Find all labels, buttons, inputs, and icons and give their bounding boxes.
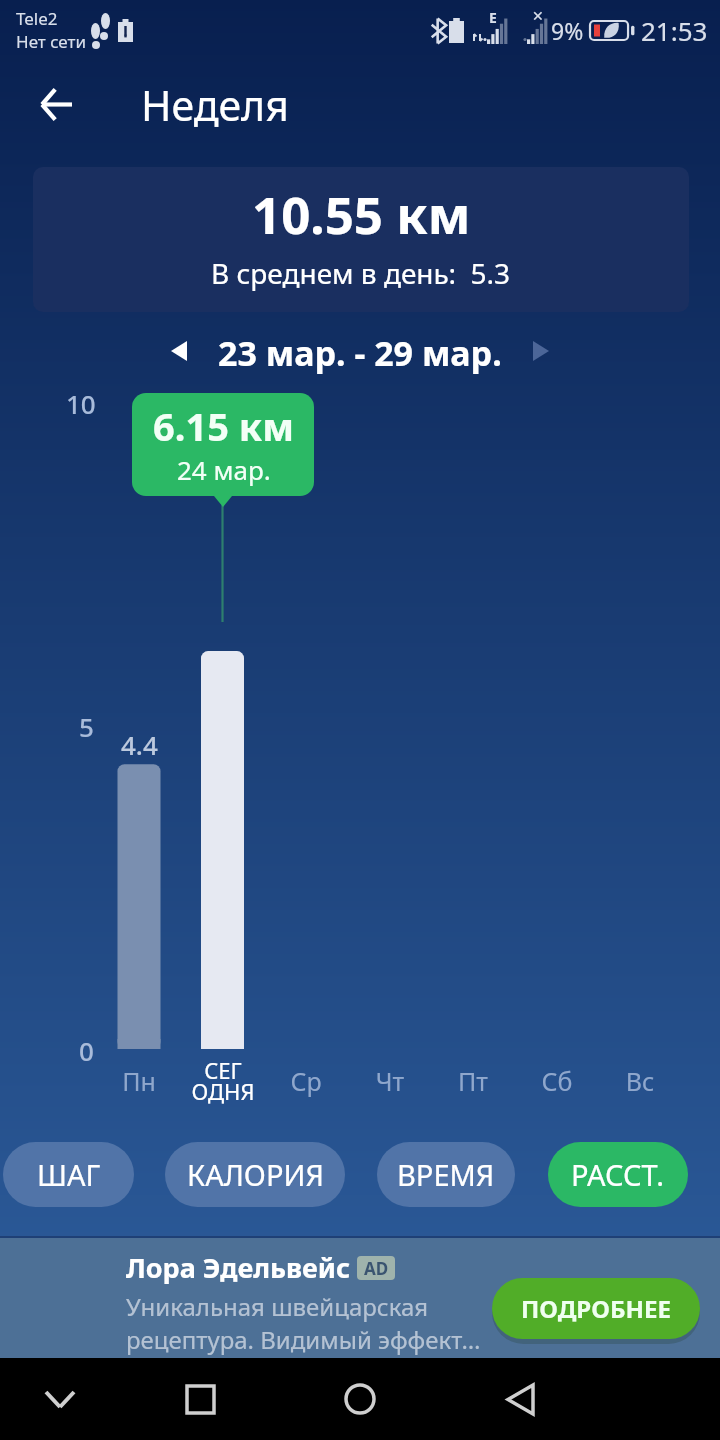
staticText: Пт — [423, 1064, 523, 1098]
staticText: Чт — [340, 1064, 440, 1098]
button[interactable]: 6.15 км — [132, 393, 314, 496]
button[interactable]: Recents — [150, 1358, 250, 1440]
button[interactable]: Чт — [340, 1064, 440, 1098]
staticText: 9% — [551, 15, 584, 46]
staticText: 5 — [79, 709, 94, 744]
button[interactable]: Back — [470, 1358, 570, 1440]
staticText: 4.4 — [121, 727, 158, 762]
staticText: Нет сети — [16, 30, 87, 53]
button[interactable]: Next week — [517, 327, 565, 375]
staticText: 21:53 — [641, 13, 708, 48]
staticText: Ср — [256, 1064, 356, 1098]
staticText: ШАГ — [37, 1155, 101, 1194]
staticText: E — [489, 8, 497, 27]
staticText: 6.15 км — [153, 400, 294, 452]
staticText: РАССТ. — [571, 1155, 665, 1194]
staticText: 24 мар. — [177, 452, 271, 487]
button[interactable]: КАЛОРИЯ — [165, 1142, 345, 1207]
staticText: Вс — [590, 1064, 690, 1098]
staticText: рецептура. Видимый эффект… — [126, 1323, 481, 1356]
button[interactable]: 10.55 км — [33, 167, 689, 312]
button[interactable]: Home — [310, 1358, 410, 1440]
staticText: КАЛОРИЯ — [187, 1155, 324, 1194]
staticText: В среднем в день: 5.3 — [211, 254, 511, 292]
button[interactable]: Back — [12, 60, 100, 148]
staticText: 23 мар. - 29 мар. — [218, 330, 502, 376]
button[interactable]: Hide keyboard — [10, 1358, 110, 1440]
button[interactable]: Пт — [423, 1064, 523, 1098]
staticText: 0 — [79, 1033, 94, 1068]
staticText: ✕ — [532, 8, 544, 24]
staticText: Пн — [89, 1064, 189, 1098]
button[interactable]: Пн — [89, 1064, 189, 1098]
staticText: Лора Эдельвейс — [126, 1249, 351, 1286]
staticText: ПОДРОБНЕЕ — [521, 1292, 671, 1325]
staticText: AD — [364, 1257, 389, 1280]
button[interactable]: Ср — [256, 1064, 356, 1098]
staticText: 10 — [66, 386, 96, 421]
staticText: Уникальная швейцарская — [126, 1290, 429, 1323]
button[interactable]: Вс — [590, 1064, 690, 1098]
button[interactable]: ВРЕМЯ — [377, 1142, 515, 1207]
button[interactable]: Сб — [507, 1064, 607, 1098]
button[interactable]: ШАГ — [3, 1142, 134, 1207]
button[interactable]: Лора Эдельвейс — [0, 1238, 720, 1358]
staticText: ВРЕМЯ — [397, 1155, 495, 1194]
staticText: СЕГ ОДНЯ — [173, 1055, 273, 1107]
button[interactable]: ПОДРОБНЕЕ — [492, 1278, 700, 1339]
staticText: Tele2 — [16, 7, 58, 30]
button[interactable]: РАССТ. — [548, 1142, 688, 1207]
staticText: 10.55 км — [252, 179, 471, 248]
button[interactable]: СЕГ ОДНЯ — [173, 1055, 273, 1107]
button[interactable]: Previous week — [155, 327, 203, 375]
staticText: Сб — [507, 1064, 607, 1098]
staticText: Неделя — [141, 77, 289, 133]
